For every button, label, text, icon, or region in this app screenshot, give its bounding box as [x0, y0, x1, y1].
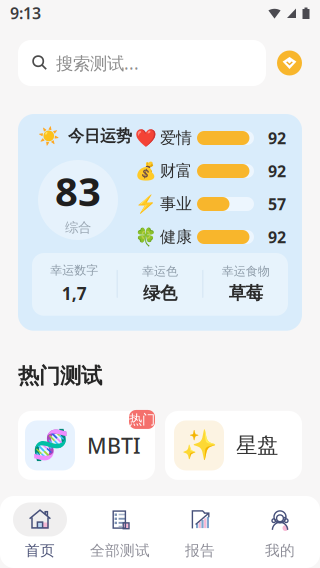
- staticText: 我的: [265, 541, 295, 559]
- staticText: 83: [55, 164, 101, 217]
- staticText: 草莓: [229, 283, 263, 304]
- staticText: 今日运势: [68, 126, 132, 146]
- button[interactable]: 首页: [0, 502, 80, 559]
- staticText: 1,7: [62, 282, 87, 305]
- staticText: 热门: [129, 411, 155, 428]
- staticText: 92: [268, 160, 286, 182]
- staticText: 事业: [160, 194, 192, 214]
- staticText: 财富: [160, 161, 192, 181]
- staticText: MBTI: [87, 431, 141, 460]
- button[interactable]: 搜索测试...: [18, 40, 266, 86]
- staticText: 综合: [65, 219, 91, 236]
- staticText: 92: [268, 127, 286, 149]
- staticText: 全部测试: [90, 541, 150, 559]
- staticText: 报告: [185, 541, 215, 559]
- staticText: 💰: [135, 161, 157, 181]
- staticText: ✨: [180, 429, 217, 462]
- staticText: 幸运食物: [222, 264, 270, 279]
- staticText: 🧬: [31, 429, 68, 462]
- staticText: 9:13: [10, 2, 41, 24]
- button[interactable]: 全部测试: [80, 502, 160, 559]
- staticText: 搜索测试...: [56, 51, 139, 74]
- staticText: ☀️: [38, 126, 60, 146]
- staticText: 首页: [25, 541, 55, 559]
- staticText: 热门测试: [18, 363, 102, 389]
- staticText: 幸运色: [142, 264, 178, 279]
- button[interactable]: 报告: [160, 502, 240, 559]
- button[interactable]: 🧬: [18, 411, 155, 480]
- staticText: 绿色: [143, 283, 177, 304]
- staticText: ⚡: [135, 194, 157, 214]
- staticText: 爱情: [160, 128, 192, 148]
- staticText: 92: [268, 226, 286, 248]
- staticText: ❤️: [135, 128, 157, 148]
- staticText: 57: [268, 193, 286, 215]
- staticText: 幸运数字: [50, 263, 98, 278]
- staticText: 健康: [160, 227, 192, 247]
- button[interactable]: ✨: [165, 411, 302, 480]
- button[interactable]: 我的: [240, 502, 320, 559]
- staticText: 🍀: [135, 227, 157, 247]
- button[interactable]: 会员: [277, 50, 302, 75]
- staticText: 星盘: [236, 432, 278, 459]
